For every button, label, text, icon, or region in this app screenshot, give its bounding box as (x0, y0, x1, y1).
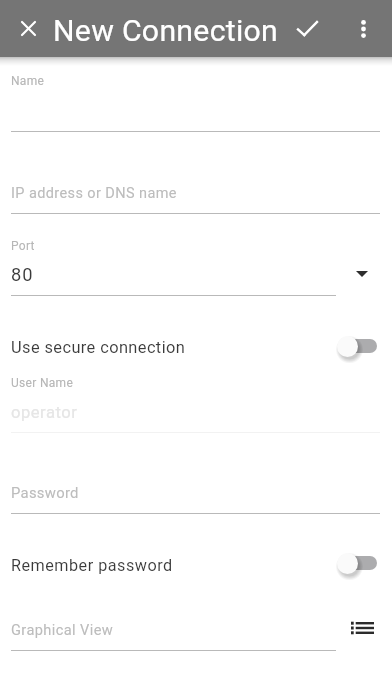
button[interactable]: List view (345, 611, 379, 645)
staticText: New Connection (53, 13, 279, 48)
button[interactable] (0, 330, 392, 363)
button[interactable]: Toggle (335, 333, 381, 363)
staticText: operator (11, 403, 78, 422)
staticText: Password (11, 484, 79, 501)
staticText: Port (11, 239, 35, 253)
staticText: IP address or DNS name (11, 185, 177, 202)
button[interactable]: More options (343, 8, 384, 49)
staticText: 80 (11, 264, 34, 285)
staticText: User Name (11, 376, 74, 390)
staticText: Remember password (11, 556, 173, 575)
button[interactable]: Save (287, 8, 328, 49)
button[interactable] (0, 548, 392, 581)
staticText: Graphical View (11, 621, 114, 638)
staticText: Name (11, 74, 45, 88)
button[interactable]: Select port (344, 256, 380, 292)
button[interactable]: Toggle (335, 550, 381, 580)
button[interactable]: Close (8, 8, 49, 49)
staticText: Use secure connection (11, 338, 186, 357)
